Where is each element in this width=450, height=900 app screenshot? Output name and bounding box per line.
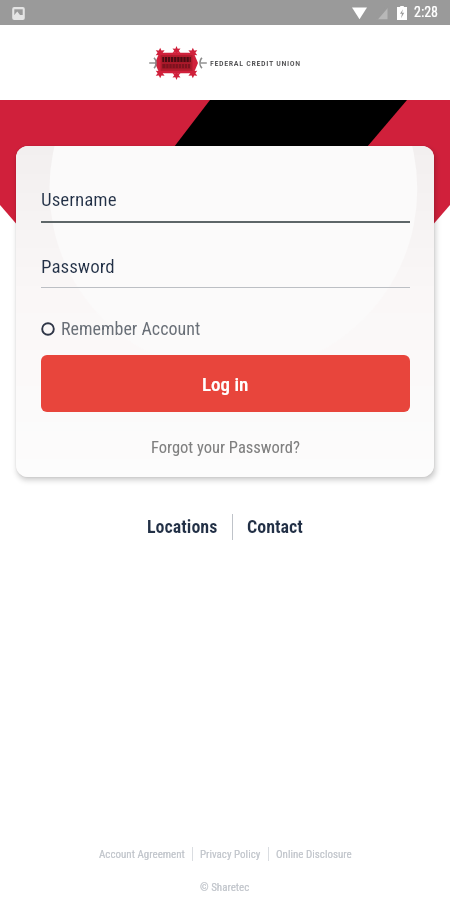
other: Credit union logo [155,48,198,78]
staticText: © Sharetec [200,881,250,894]
staticText: Remember Account [61,318,201,339]
button[interactable]: Privacy Policy [200,848,261,861]
staticText: 2:28 [414,4,439,20]
other: Screenshot notification [11,6,26,21]
staticText: FEDERAL CREDIT UNION [210,59,301,68]
button[interactable]: Forgot your Password? [151,438,300,457]
staticText: Password [41,255,115,277]
staticText: Log in [202,373,249,395]
staticText: Username [41,188,117,210]
button[interactable]: Log in [41,355,410,412]
button[interactable]: Locations [133,510,232,543]
button[interactable]: Remember Account [41,318,201,339]
button[interactable]: Contact [233,510,317,543]
button[interactable]: Online Disclosure [276,848,352,861]
button[interactable]: Account Agreement [99,848,185,861]
